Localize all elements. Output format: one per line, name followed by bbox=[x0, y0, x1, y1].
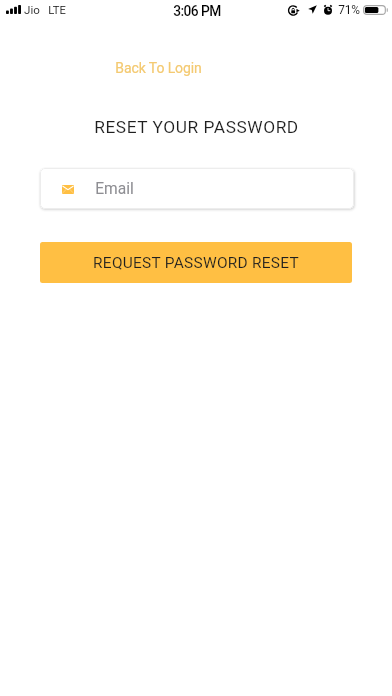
staticText: LTE bbox=[48, 4, 66, 17]
button[interactable]: Back To Login bbox=[100, 57, 217, 78]
button[interactable]: Email input field bbox=[40, 168, 354, 209]
staticText: Back To Login bbox=[115, 60, 202, 76]
staticText: Jio bbox=[24, 3, 40, 17]
staticText: REQUEST PASSWORD RESET bbox=[93, 254, 299, 272]
button[interactable]: REQUEST PASSWORD RESET bbox=[40, 242, 352, 283]
staticText: 71% bbox=[338, 3, 360, 17]
staticText: RESET YOUR PASSWORD bbox=[94, 117, 299, 137]
staticText: Email bbox=[95, 180, 134, 198]
staticText: 3:06 PM bbox=[173, 3, 221, 19]
